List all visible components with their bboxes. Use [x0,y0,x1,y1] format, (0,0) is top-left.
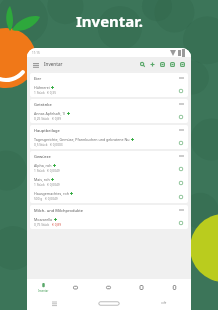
staticText: 0,25 Stück [34,117,50,121]
staticText: 0,5 Stück [34,143,48,147]
staticText: Inventar [44,61,63,67]
staticText: Alpha, roh [34,163,52,168]
button[interactable] [92,279,125,296]
staticText: € 0,89 [52,223,61,227]
staticText: 1 Stück [34,183,45,187]
staticText: Eier [34,76,42,81]
button[interactable]: Eier [30,73,188,83]
staticText: Mais, roh [34,177,50,182]
button[interactable] [125,279,158,296]
button[interactable]: Add [147,59,157,69]
button[interactable]: Open Annas Apfelsaft, 1l [177,113,184,120]
button[interactable]: Open Hühnerei [177,87,184,94]
button[interactable]: Open Mozzarella [177,219,184,226]
staticText: Gewürze [34,154,51,159]
staticText: Getränke [34,102,52,107]
button[interactable] [158,279,191,296]
button[interactable]: Getränke [30,99,188,109]
staticText: € 0,0049 [45,197,58,201]
staticText: Hühnerei [34,85,50,90]
staticText: € 0,35 [47,91,56,95]
button[interactable]: Tagesgerichte, Gemüse, Pfannkuchen und g… [30,135,188,149]
staticText: 500 g [34,197,43,201]
staticText: € 0,0049 [47,183,60,187]
staticText: Annas Apfelsaft, 1l [34,111,66,116]
button[interactable]: Hausgemachtes, roh [30,189,188,203]
staticText: Inventar [38,289,49,293]
button[interactable]: Inventar [27,279,59,296]
button[interactable]: Home [81,296,136,310]
button[interactable]: Annas Apfelsaft, 1l [30,109,188,123]
staticText: € 0,0003 [50,143,63,147]
button[interactable]: Open Hausgemachtes, roh [177,193,184,200]
button[interactable]: Open Alpha, roh [177,165,184,172]
staticText: 1 Stück [34,169,45,173]
button[interactable]: Milch- und Milchprodukte [30,205,188,215]
button[interactable]: Sync [167,59,177,69]
staticText: 0,75 Stück [34,223,50,227]
staticText: Inventar. [76,11,143,31]
button[interactable]: Back [136,296,191,310]
staticText: Tagesgerichte, Gemüse, Pfannkuchen und g… [34,137,130,142]
button[interactable]: Gewürze [30,151,188,161]
staticText: 1 Stück [34,91,45,95]
button[interactable]: Hühnerei [30,83,188,97]
button[interactable]: Open Tagesgerichte, Gemüse, Pfannkuchen … [177,139,184,146]
staticText: Hauptbeilage [34,128,60,133]
button[interactable]: Recents [27,296,81,310]
staticText: Mozzarella [34,217,53,222]
button[interactable]: Delete [177,59,187,69]
button[interactable]: Archive [157,59,167,69]
staticText: € 0,0049 [47,169,60,173]
staticText: 11:15 [32,51,40,55]
button[interactable]: Alpha, roh [30,161,188,175]
button[interactable]: Hauptbeilage [30,125,188,135]
button[interactable]: Mozzarella [30,215,188,229]
staticText: € 0,89 [52,117,61,121]
button[interactable]: Menu [31,60,40,69]
staticText: Hausgemachtes, roh [34,191,69,196]
staticText: Milch- und Milchprodukte [34,208,84,213]
button[interactable]: Search [137,59,147,69]
button[interactable]: Open Mais, roh [177,179,184,186]
button[interactable]: Mais, roh [30,175,188,189]
button[interactable] [59,279,92,296]
